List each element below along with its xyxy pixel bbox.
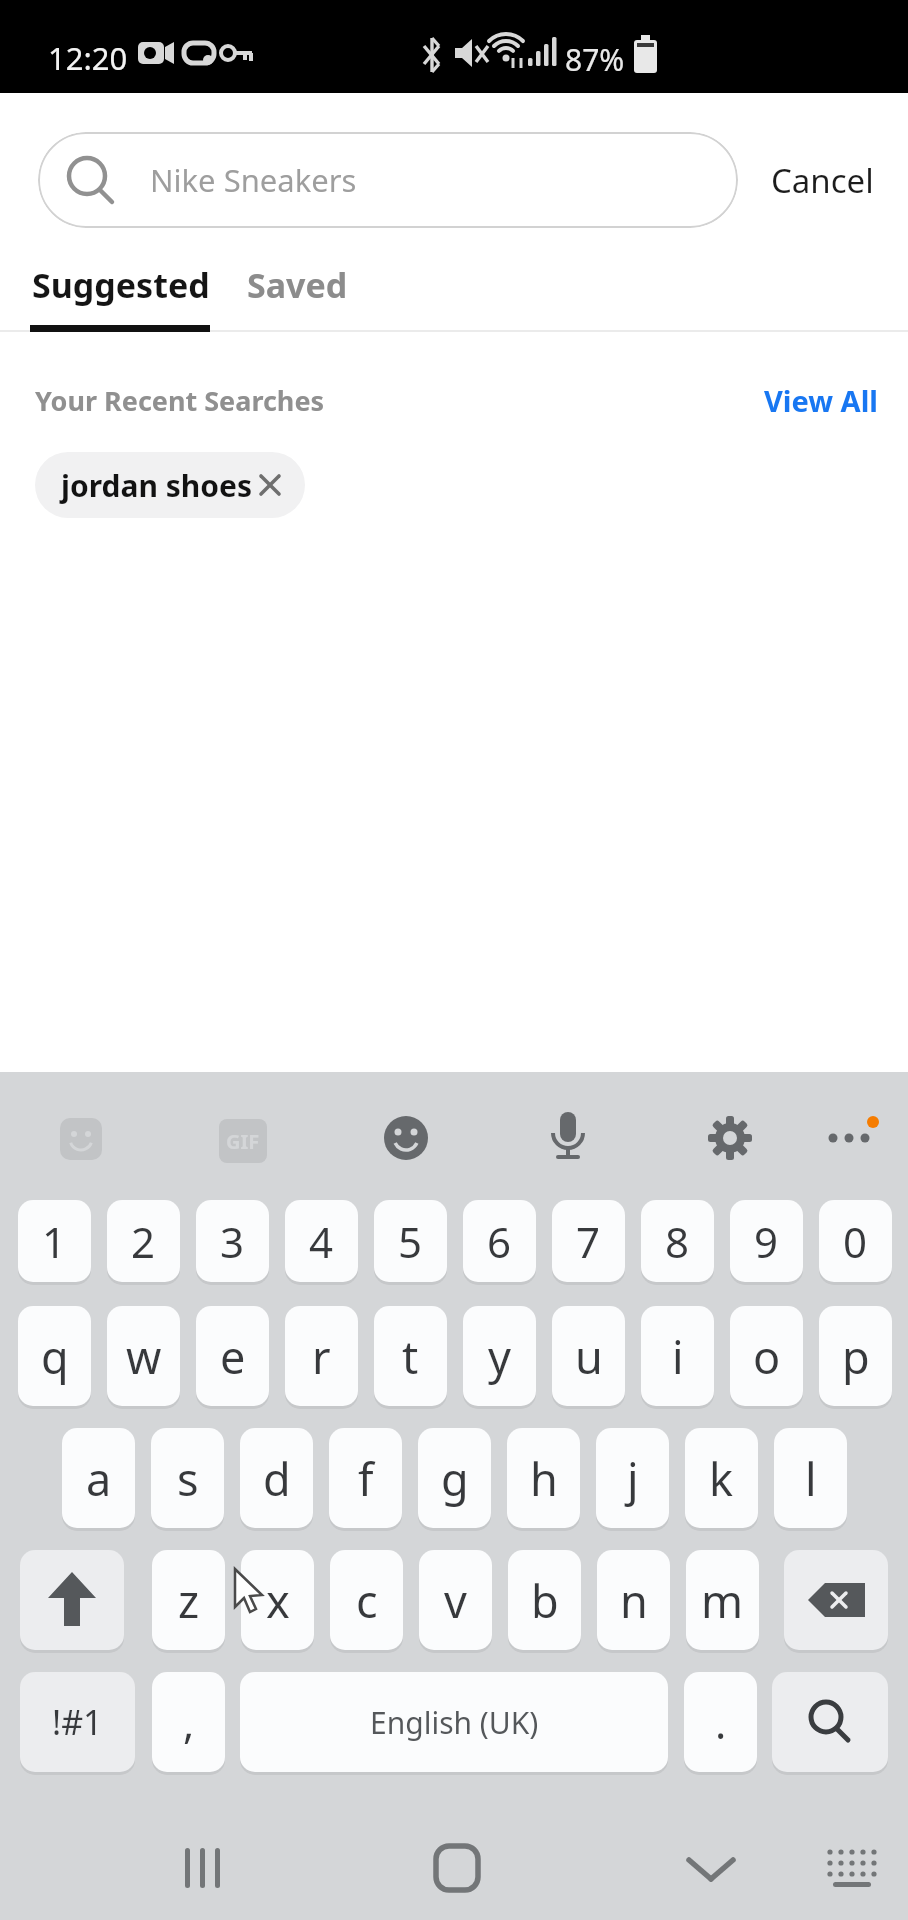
staticText: Suggested bbox=[32, 262, 210, 308]
button[interactable] bbox=[784, 1550, 888, 1650]
staticText: English (UK) bbox=[370, 1702, 539, 1743]
button[interactable]: u bbox=[552, 1306, 625, 1406]
staticText: k bbox=[709, 1448, 734, 1509]
button[interactable]: z bbox=[152, 1550, 225, 1650]
button[interactable]: f bbox=[329, 1428, 402, 1528]
button[interactable]: jordan shoes bbox=[35, 452, 305, 518]
button[interactable]: Nike Sneakers bbox=[38, 132, 738, 228]
button[interactable] bbox=[56, 1114, 106, 1164]
staticText: Saved bbox=[247, 262, 348, 308]
staticText: Cancel bbox=[771, 158, 874, 203]
button[interactable]: r bbox=[285, 1306, 358, 1406]
button[interactable] bbox=[705, 1113, 755, 1163]
button[interactable]: d bbox=[240, 1428, 313, 1528]
staticText: 1 bbox=[42, 1213, 67, 1270]
staticText: u bbox=[575, 1326, 603, 1387]
staticText: jordan shoes bbox=[61, 465, 253, 506]
button[interactable]: 2 bbox=[107, 1200, 180, 1282]
staticText: n bbox=[620, 1570, 648, 1631]
staticText: c bbox=[356, 1570, 378, 1631]
staticText: b bbox=[531, 1570, 559, 1631]
staticText: i bbox=[672, 1326, 684, 1387]
button[interactable] bbox=[543, 1110, 593, 1166]
staticText: f bbox=[358, 1448, 374, 1509]
button[interactable]: GIF bbox=[219, 1119, 267, 1163]
button[interactable]: i bbox=[641, 1306, 714, 1406]
staticText: 9 bbox=[754, 1213, 779, 1270]
staticText: v bbox=[444, 1570, 467, 1631]
staticText: View All bbox=[764, 381, 878, 420]
button[interactable]: j bbox=[596, 1428, 669, 1528]
button[interactable]: 0 bbox=[819, 1200, 892, 1282]
staticText: 4 bbox=[309, 1213, 334, 1270]
button[interactable]: 3 bbox=[196, 1200, 269, 1282]
button[interactable] bbox=[666, 1820, 756, 1910]
button[interactable]: c bbox=[330, 1550, 403, 1650]
staticText: a bbox=[86, 1448, 112, 1509]
button[interactable]: , bbox=[152, 1672, 225, 1772]
staticText: s bbox=[177, 1448, 199, 1509]
button[interactable] bbox=[772, 1672, 888, 1772]
button[interactable]: e bbox=[196, 1306, 269, 1406]
button[interactable]: 4 bbox=[285, 1200, 358, 1282]
staticText: w bbox=[126, 1326, 162, 1387]
button[interactable]: 9 bbox=[730, 1200, 803, 1282]
button[interactable]: a bbox=[62, 1428, 135, 1528]
button[interactable]: h bbox=[507, 1428, 580, 1528]
button[interactable]: l bbox=[774, 1428, 847, 1528]
button[interactable]: View All bbox=[760, 375, 882, 425]
button[interactable]: . bbox=[684, 1672, 757, 1772]
button[interactable]: t bbox=[374, 1306, 447, 1406]
staticText: Your Recent Searches bbox=[35, 382, 325, 419]
staticText: y bbox=[488, 1326, 511, 1387]
staticText: g bbox=[441, 1448, 469, 1509]
staticText: 0 bbox=[843, 1213, 868, 1270]
button[interactable]: s bbox=[151, 1428, 224, 1528]
button[interactable]: g bbox=[418, 1428, 491, 1528]
button[interactable]: o bbox=[730, 1306, 803, 1406]
button[interactable] bbox=[411, 1820, 501, 1910]
button[interactable]: n bbox=[597, 1550, 670, 1650]
staticText: m bbox=[701, 1570, 744, 1631]
staticText: 7 bbox=[576, 1213, 601, 1270]
button[interactable] bbox=[824, 1113, 880, 1163]
staticText: 8 bbox=[665, 1213, 690, 1270]
staticText: q bbox=[41, 1326, 69, 1387]
button[interactable]: v bbox=[419, 1550, 492, 1650]
button[interactable] bbox=[20, 1550, 124, 1650]
button[interactable]: y bbox=[463, 1306, 536, 1406]
staticText: Nike Sneakers bbox=[150, 159, 357, 201]
button[interactable]: 1 bbox=[18, 1200, 91, 1282]
button[interactable] bbox=[381, 1113, 431, 1163]
staticText: j bbox=[627, 1448, 639, 1509]
staticText: 6 bbox=[487, 1213, 512, 1270]
button[interactable]: 5 bbox=[374, 1200, 447, 1282]
button[interactable]: Saved bbox=[238, 255, 356, 315]
button[interactable]: 7 bbox=[552, 1200, 625, 1282]
staticText: 2 bbox=[131, 1213, 156, 1270]
button[interactable]: Cancel bbox=[762, 150, 882, 210]
button[interactable] bbox=[160, 1820, 250, 1910]
button[interactable]: b bbox=[508, 1550, 581, 1650]
button[interactable]: 8 bbox=[641, 1200, 714, 1282]
staticText: r bbox=[312, 1326, 331, 1387]
staticText: z bbox=[178, 1570, 200, 1631]
button[interactable]: 6 bbox=[463, 1200, 536, 1282]
staticText: . bbox=[715, 1694, 727, 1751]
staticText: GIF bbox=[226, 1128, 260, 1155]
staticText: , bbox=[183, 1694, 195, 1751]
button[interactable]: k bbox=[685, 1428, 758, 1528]
button[interactable]: m bbox=[686, 1550, 759, 1650]
staticText: e bbox=[220, 1326, 246, 1387]
button[interactable]: p bbox=[819, 1306, 892, 1406]
button[interactable]: q bbox=[18, 1306, 91, 1406]
button[interactable]: Suggested bbox=[26, 255, 216, 315]
staticText: 3 bbox=[220, 1213, 245, 1270]
button[interactable]: !#1 bbox=[20, 1672, 135, 1772]
button[interactable]: x bbox=[241, 1550, 314, 1650]
staticText: !#1 bbox=[52, 1699, 103, 1745]
button[interactable]: w bbox=[107, 1306, 180, 1406]
button[interactable] bbox=[807, 1820, 897, 1910]
staticText: o bbox=[753, 1326, 781, 1387]
button[interactable]: English (UK) bbox=[240, 1672, 668, 1772]
